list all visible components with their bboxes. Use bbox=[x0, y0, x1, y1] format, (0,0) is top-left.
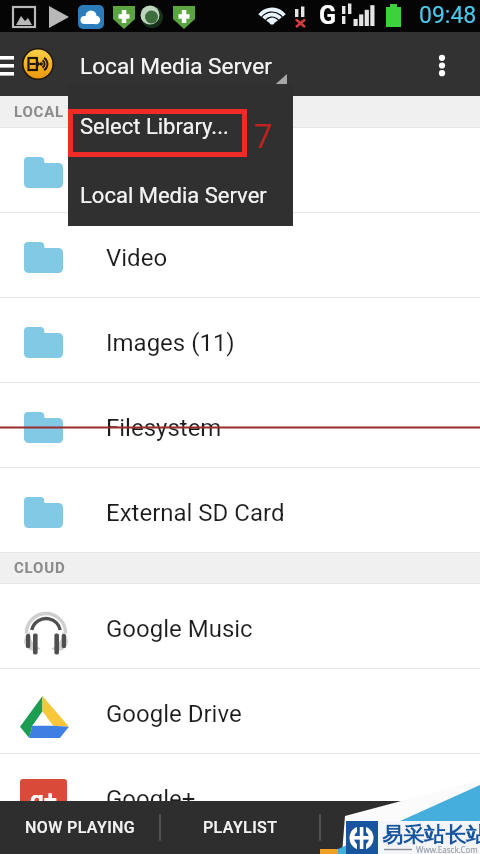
staticText: 7 bbox=[254, 117, 273, 156]
button[interactable]: PLAYLIST bbox=[160, 801, 320, 854]
button[interactable]: Google Music bbox=[0, 584, 480, 668]
staticText: Www.Easck.Com Webmaster bbox=[416, 844, 480, 854]
button[interactable]: Google Drive bbox=[0, 669, 480, 753]
staticText: Google Music bbox=[106, 615, 253, 643]
button[interactable]: Select Library... bbox=[68, 84, 293, 156]
staticText: External SD Card bbox=[106, 499, 285, 527]
staticText: Filesystem bbox=[106, 414, 222, 442]
button[interactable]: g+ bbox=[0, 754, 480, 838]
staticText: g+ bbox=[30, 786, 57, 814]
button[interactable]: Music bbox=[0, 128, 480, 212]
staticText: Local Media Server bbox=[80, 53, 272, 79]
button[interactable]: Open navigation drawer bbox=[0, 56, 20, 96]
staticText: PLAYLIST bbox=[203, 818, 278, 837]
button[interactable]: Images (11) bbox=[0, 298, 480, 382]
staticText: NOW PLAYING bbox=[25, 818, 136, 837]
button[interactable]: External SD Card bbox=[0, 468, 480, 552]
staticText: 易采站长站 bbox=[382, 822, 480, 848]
staticText: Video bbox=[106, 244, 168, 272]
button[interactable]: Filesystem bbox=[0, 383, 480, 467]
button[interactable] bbox=[320, 801, 480, 854]
button[interactable]: More options bbox=[424, 32, 480, 96]
button[interactable]: Local Media Server bbox=[68, 156, 293, 226]
staticText: Google+ bbox=[106, 785, 196, 813]
button[interactable]: NOW PLAYING bbox=[0, 801, 160, 854]
staticText: 09:48 bbox=[419, 2, 477, 29]
staticText: CLOUD bbox=[14, 559, 66, 577]
staticText: LOCAL bbox=[14, 103, 64, 121]
staticText: Local Media Server bbox=[80, 183, 267, 209]
button[interactable]: Video bbox=[0, 213, 480, 297]
staticText: G bbox=[319, 1, 337, 30]
staticText: Google Drive bbox=[106, 700, 242, 728]
staticText: Images (11) bbox=[106, 329, 235, 357]
staticText: Select Library... bbox=[80, 114, 229, 140]
